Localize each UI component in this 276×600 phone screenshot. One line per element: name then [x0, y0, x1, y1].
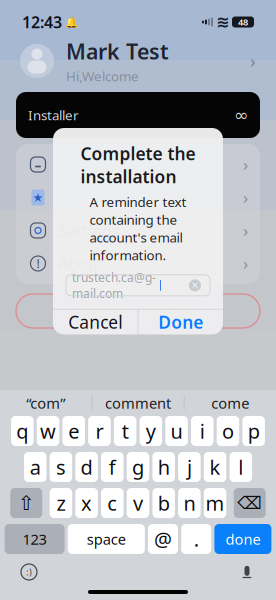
button[interactable]: c: [101, 488, 124, 518]
button[interactable]: r: [88, 416, 111, 446]
button[interactable]: space: [68, 524, 145, 554]
staticText: e: [68, 418, 79, 444]
staticText: n: [183, 490, 195, 516]
staticText: w: [40, 418, 56, 444]
button[interactable]: m: [204, 488, 226, 518]
staticText: 48: [238, 16, 248, 28]
button[interactable]: k: [204, 452, 226, 482]
staticText: q: [16, 418, 28, 444]
staticText: A reminder text containing the account's…: [89, 193, 186, 264]
button[interactable]: Delete: [234, 488, 266, 518]
button[interactable]: comment: [92, 392, 184, 414]
staticText: About: [58, 253, 104, 274]
staticText: Installer: [28, 106, 79, 124]
button[interactable]: e: [62, 416, 85, 446]
button[interactable]: Mark Test: [0, 38, 276, 84]
staticText: m: [206, 490, 225, 516]
staticText: f: [109, 454, 116, 480]
staticText: .: [194, 526, 199, 552]
button[interactable]: o: [217, 416, 239, 446]
staticText: y: [146, 418, 156, 444]
staticText: t: [122, 418, 129, 444]
staticText: s: [56, 454, 66, 480]
staticText: done: [225, 529, 260, 549]
staticText: ›: [250, 49, 256, 72]
button[interactable]: Shift: [10, 488, 42, 518]
staticText: x: [81, 490, 92, 516]
button[interactable]: a: [24, 452, 46, 482]
staticText: come: [211, 393, 249, 413]
button[interactable]: n: [178, 488, 201, 518]
button[interactable]: u: [165, 416, 188, 446]
button[interactable]: j: [178, 452, 201, 482]
staticText: o: [222, 418, 234, 444]
staticText: Hi,Welcome: [66, 67, 139, 85]
staticText: ⇧: [18, 492, 35, 514]
staticText: p: [248, 418, 260, 444]
button[interactable]: d: [75, 452, 98, 482]
staticText: d: [81, 454, 93, 480]
button[interactable]: z: [50, 488, 72, 518]
button[interactable]: Cancel: [53, 309, 138, 334]
button[interactable]: [16, 148, 260, 181]
staticText: z: [56, 490, 65, 516]
staticText: u: [170, 418, 182, 444]
button[interactable]: f: [101, 452, 123, 482]
button[interactable]: Resume Installtion: [16, 294, 260, 328]
staticText: v: [133, 490, 143, 516]
button[interactable]: v: [127, 488, 149, 518]
staticText: 12:43: [22, 11, 62, 33]
button[interactable]: y: [140, 416, 162, 446]
button[interactable]: Clear text: [186, 276, 204, 294]
staticText: ★: [32, 191, 43, 204]
button[interactable]: w: [37, 416, 59, 446]
button[interactable]: t: [114, 416, 136, 446]
staticText: Complete the installation: [80, 142, 195, 188]
button[interactable]: ★: [16, 181, 260, 214]
button[interactable]: 123: [5, 524, 65, 554]
staticText: Cancel: [68, 310, 122, 333]
button[interactable]: come: [184, 392, 276, 414]
button[interactable]: i: [191, 416, 213, 446]
button[interactable]: s: [50, 452, 72, 482]
button[interactable]: h: [152, 452, 175, 482]
staticText: Settings: [58, 220, 120, 241]
button[interactable]: !: [16, 247, 260, 280]
staticText: ›: [243, 154, 248, 175]
staticText: Mark Test: [66, 37, 169, 65]
staticText: ›: [243, 253, 248, 274]
staticText: ⌫: [237, 493, 262, 513]
staticText: b: [158, 490, 170, 516]
staticText: Resume Installtion: [74, 301, 202, 321]
staticText: a: [30, 454, 41, 480]
staticText: comment: [105, 393, 171, 413]
button[interactable]: g: [127, 452, 149, 482]
button[interactable]: x: [75, 488, 98, 518]
button[interactable]: Emoji keyboard: [16, 559, 42, 585]
button[interactable]: “com”: [0, 392, 91, 414]
staticText: space: [87, 529, 126, 549]
staticText: g: [132, 454, 144, 480]
button[interactable]: Settings: [16, 214, 260, 247]
staticText: trustech.ca@gmail.com: [72, 269, 156, 301]
staticText: 123: [23, 529, 47, 549]
button[interactable]: done: [214, 524, 271, 554]
button[interactable]: @: [148, 524, 178, 554]
button[interactable]: l: [229, 452, 252, 482]
staticText: h: [158, 454, 170, 480]
button[interactable]: .: [181, 524, 211, 554]
staticText: ✕: [191, 280, 199, 291]
staticText: ›: [243, 220, 248, 241]
staticText: @: [154, 526, 172, 552]
button[interactable]: b: [152, 488, 175, 518]
button[interactable]: Installer: [16, 92, 260, 138]
staticText: r: [95, 418, 103, 444]
staticText: :): [26, 566, 32, 578]
staticText: ›: [243, 187, 248, 208]
button[interactable]: Done: [138, 309, 223, 334]
button[interactable]: p: [242, 416, 265, 446]
button[interactable]: q: [11, 416, 34, 446]
button[interactable]: Dictation: [234, 559, 260, 585]
staticText: l: [238, 454, 243, 480]
staticText: !: [36, 255, 39, 271]
